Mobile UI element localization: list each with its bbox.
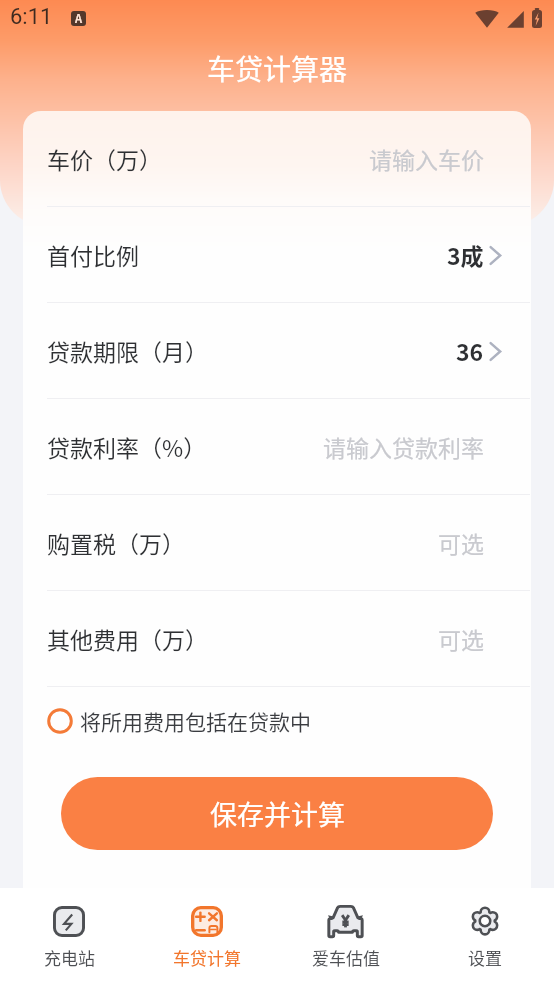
staticText: 6:11 [10, 4, 53, 30]
staticText: 购置税（万） [47, 526, 185, 559]
staticText: 充电站 [44, 945, 95, 970]
button[interactable]: 贷款利率（%） [23, 399, 531, 494]
staticText: 将所用费用包括在贷款中 [80, 706, 311, 736]
staticText: 车贷计算器 [207, 48, 348, 89]
staticText: 可选 [438, 622, 484, 655]
staticText: 请输入贷款利率 [323, 430, 484, 463]
button[interactable]: 充电站 [0, 888, 138, 984]
staticText: A [75, 11, 83, 25]
button[interactable]: 设置 [415, 888, 554, 984]
button[interactable]: 首付比例 [23, 207, 531, 302]
button[interactable]: 其他费用（万） [23, 591, 531, 686]
staticText: 车价（万） [47, 142, 162, 175]
staticText: 爱车估值 [312, 945, 380, 970]
staticText: 车贷计算 [173, 945, 241, 970]
button[interactable]: 购置税（万） [23, 495, 531, 590]
button[interactable]: 车贷计算 [138, 888, 276, 984]
staticText: 首付比例 [47, 238, 139, 271]
staticText: 保存并计算 [210, 794, 345, 833]
staticText: 可选 [438, 526, 484, 559]
button[interactable]: 贷款期限（月） [23, 303, 531, 398]
staticText: 请输入车价 [369, 142, 484, 175]
staticText: 3成 [447, 238, 484, 271]
button[interactable]: 保存并计算 [61, 777, 493, 850]
staticText: 36 [456, 334, 484, 367]
staticText: 贷款期限（月） [47, 334, 208, 367]
staticText: 贷款利率（%） [47, 430, 207, 463]
staticText: 其他费用（万） [47, 622, 208, 655]
staticText: 设置 [468, 945, 502, 970]
button[interactable]: 车价（万） [23, 111, 531, 206]
button[interactable]: 将所用费用包括在贷款中 [23, 687, 531, 755]
button[interactable]: 爱车估值 [276, 888, 415, 984]
